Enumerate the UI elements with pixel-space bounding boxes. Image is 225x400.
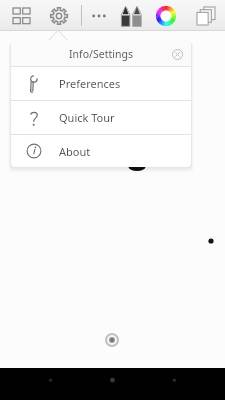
staticText: Info/Settings	[11, 47, 191, 61]
button[interactable]: Color picker	[153, 2, 179, 29]
button[interactable]: About	[11, 135, 191, 167]
staticText: About	[59, 144, 91, 159]
button[interactable]: Close	[169, 46, 185, 62]
button[interactable]: More options	[88, 4, 110, 27]
staticText: Quick Tour	[59, 110, 115, 125]
button[interactable]: Settings	[46, 3, 71, 28]
button[interactable]: Preferences	[11, 67, 191, 100]
button[interactable]: Gallery	[9, 4, 33, 28]
button[interactable]: Brushes	[118, 2, 144, 29]
button[interactable]: Home	[76, 368, 150, 400]
button[interactable]: Quick Tour	[11, 101, 191, 134]
button[interactable]: Layers	[193, 3, 218, 29]
staticText: Preferences	[59, 76, 121, 91]
